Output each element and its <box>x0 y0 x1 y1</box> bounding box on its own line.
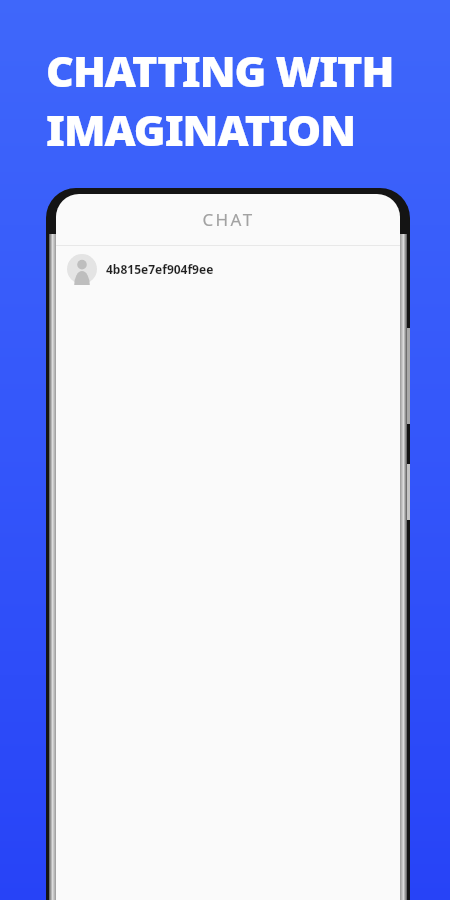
staticText: IMAGINATION <box>46 100 356 159</box>
staticText: CHAT <box>202 208 255 231</box>
staticText: CHATTING WITH <box>46 41 394 100</box>
button[interactable]: Contact avatar <box>56 246 400 292</box>
staticText: 4b815e7ef904f9ee <box>106 261 214 277</box>
other: Contact avatar <box>67 254 97 284</box>
